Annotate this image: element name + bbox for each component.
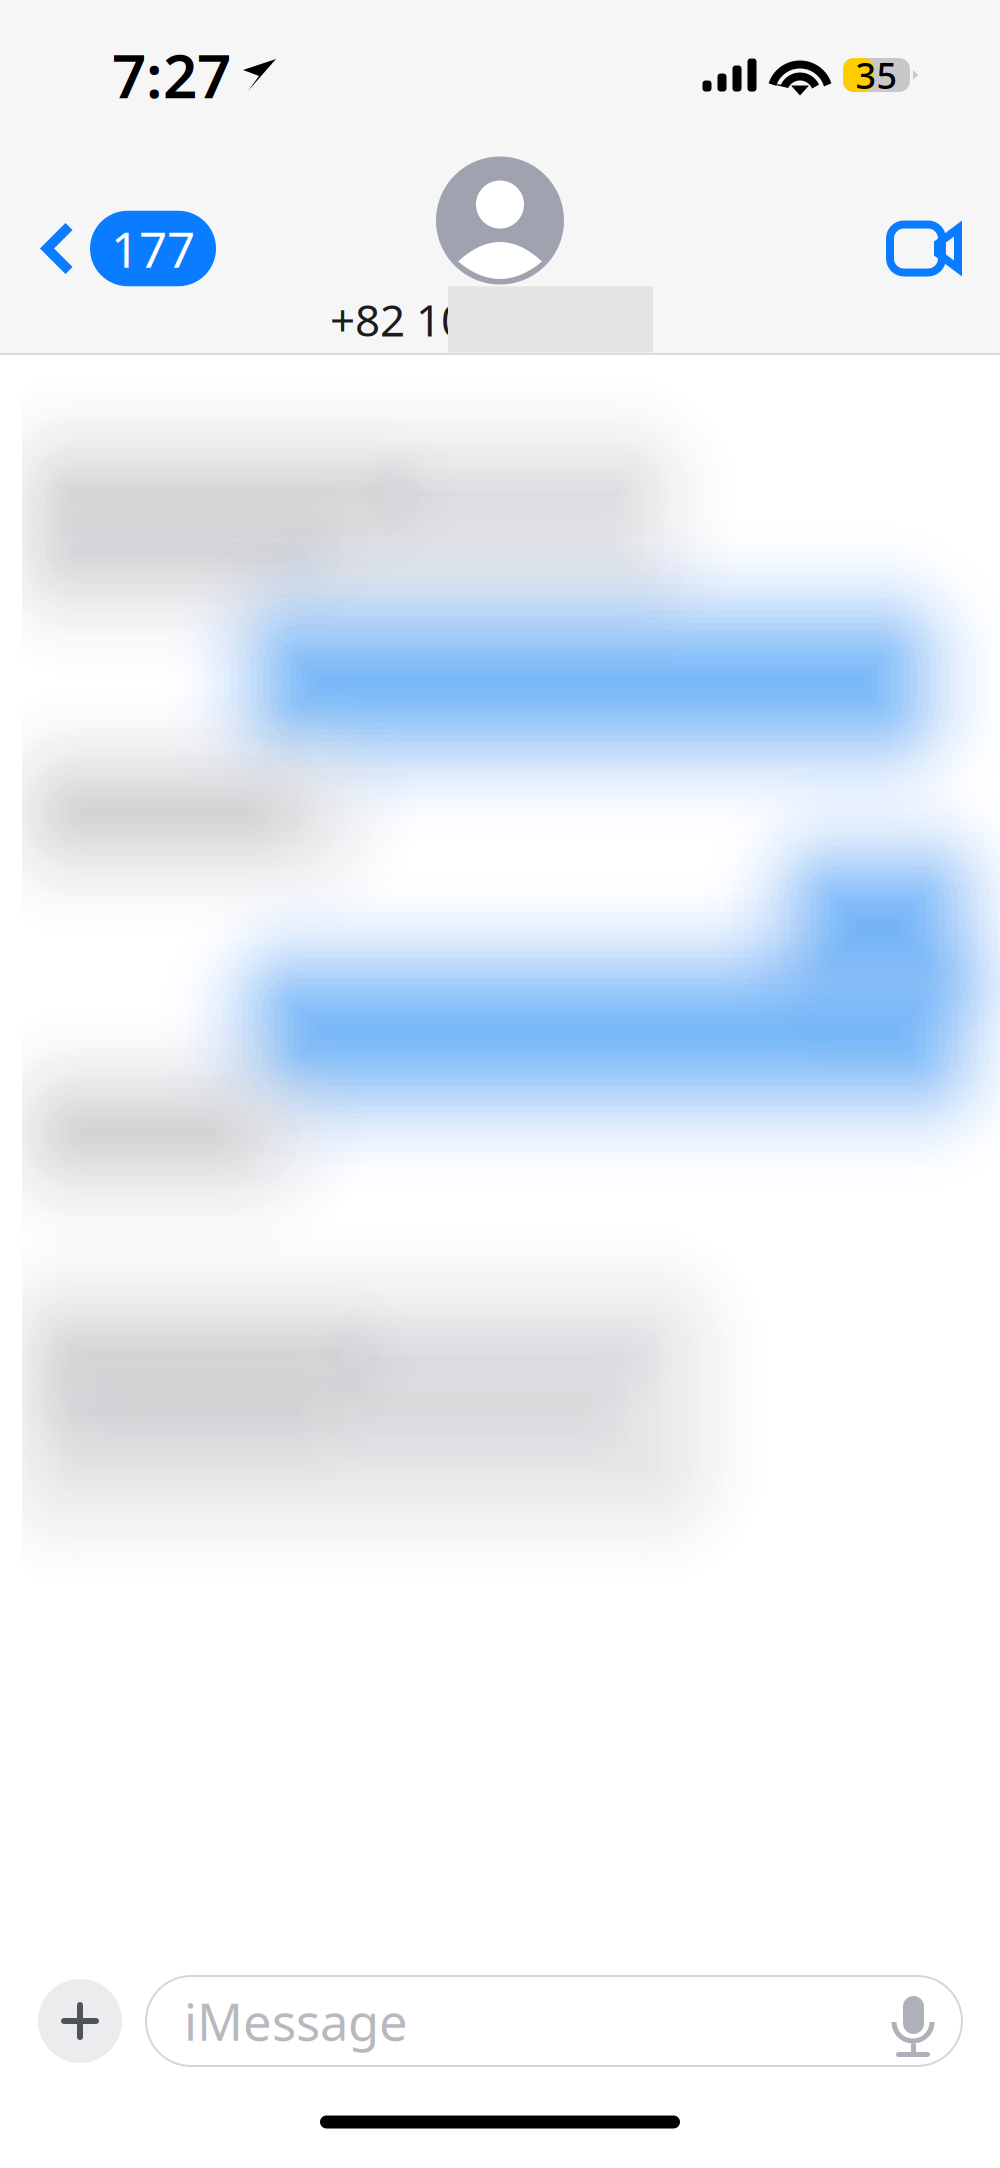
button[interactable]: 177 [0, 194, 240, 302]
button[interactable]: FaceTime [890, 194, 1000, 302]
staticText: 177 [111, 216, 195, 281]
button[interactable]: +82 10-4567-8901 [330, 150, 670, 352]
staticText: +82 10-4567-8901 [330, 290, 670, 349]
button[interactable]: iMessage [146, 1976, 962, 2066]
staticText: 35 [855, 51, 897, 99]
button[interactable]: Add attachment [38, 1979, 122, 2063]
staticText: 7:27 [112, 35, 231, 115]
staticText: iMessage [184, 1987, 408, 2055]
